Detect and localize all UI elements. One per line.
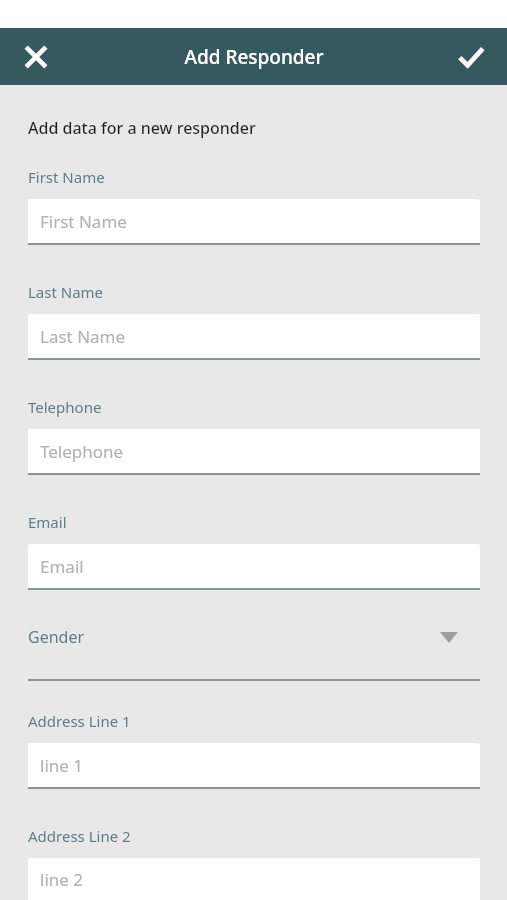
staticText: Last Name	[28, 282, 104, 302]
button[interactable]: Gender	[28, 626, 480, 681]
button[interactable]: line 2	[28, 858, 480, 900]
staticText: Address Line 2	[28, 826, 131, 846]
staticText: Telephone	[28, 397, 102, 417]
staticText: Last Name	[40, 325, 126, 348]
staticText: First Name	[40, 210, 127, 233]
staticText: Add data for a new responder	[28, 117, 256, 139]
staticText: Add Responder	[184, 44, 324, 70]
staticText: line 2	[40, 868, 84, 891]
button[interactable]: line 1	[28, 743, 480, 789]
staticText: Gender	[28, 626, 85, 648]
staticText: Email	[28, 512, 67, 532]
staticText: Email	[40, 555, 84, 578]
staticText: First Name	[28, 167, 105, 187]
staticText: Address Line 1	[28, 711, 131, 731]
button[interactable]: Last Name	[28, 314, 480, 360]
staticText: line 1	[40, 754, 84, 777]
button[interactable]: Email	[28, 544, 480, 590]
button[interactable]: Save	[449, 35, 493, 79]
button[interactable]: First Name	[28, 199, 480, 245]
staticText: Telephone	[40, 440, 124, 463]
button[interactable]: Close	[14, 35, 58, 79]
button[interactable]: Telephone	[28, 429, 480, 475]
